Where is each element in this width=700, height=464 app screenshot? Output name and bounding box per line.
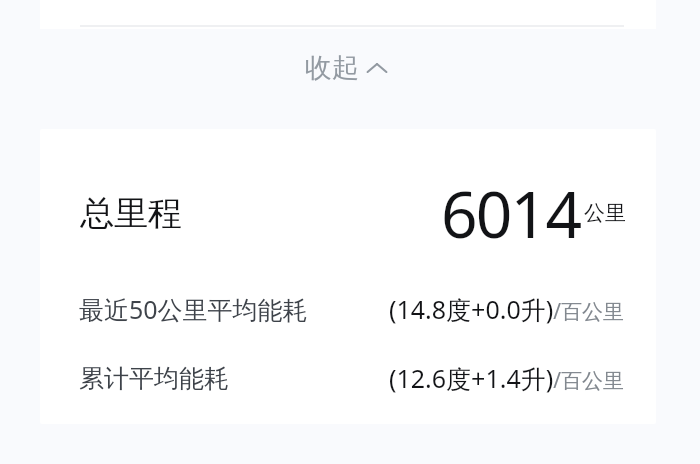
staticText: (14.8度+0.0升)/百公里 [389, 292, 625, 326]
staticText: 公里 [584, 200, 626, 226]
staticText: 总里程 [80, 192, 182, 235]
staticText: 收起 [305, 51, 359, 85]
button[interactable]: 收起 [0, 50, 696, 86]
button[interactable]: 最近50公里平均能耗 [40, 289, 656, 329]
button[interactable]: 累计平均能耗 [40, 358, 656, 398]
staticText: 累计平均能耗 [79, 363, 229, 394]
button[interactable]: 总里程 [40, 173, 656, 253]
other: Collapse [367, 58, 387, 78]
staticText: 6014 [441, 170, 581, 250]
staticText: (12.6度+1.4升)/百公里 [389, 361, 625, 395]
staticText: 最近50公里平均能耗 [79, 292, 308, 326]
